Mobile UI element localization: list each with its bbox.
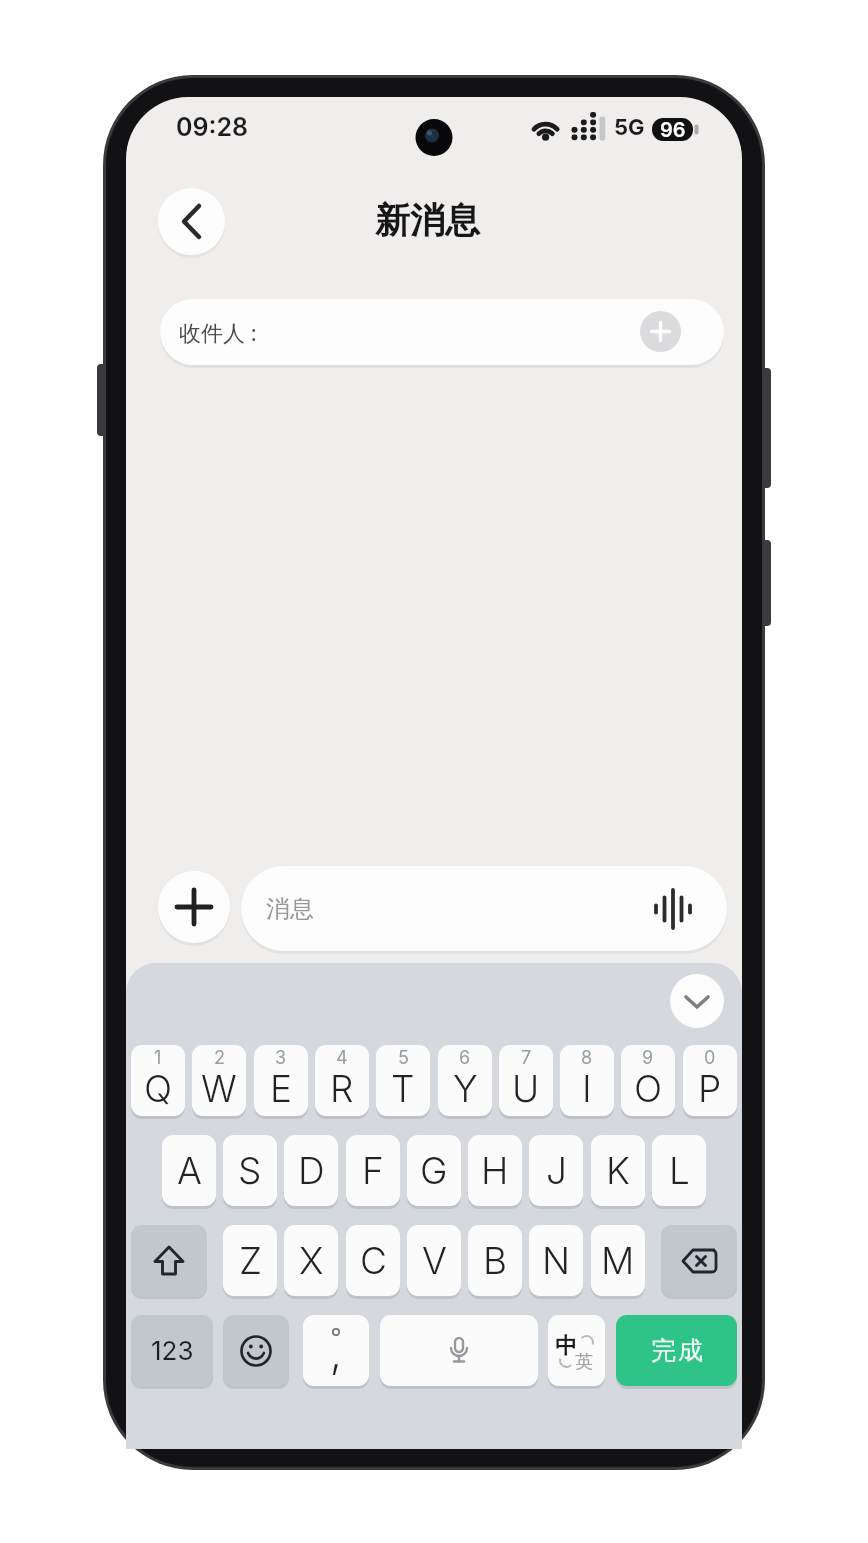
staticText: 4 (336, 1047, 348, 1069)
button[interactable] (640, 311, 681, 352)
staticText: L (669, 1148, 690, 1193)
staticText: 123 (151, 1335, 194, 1366)
button[interactable]: A (162, 1135, 216, 1206)
button[interactable]: M (591, 1225, 645, 1296)
button[interactable]: X (284, 1225, 338, 1296)
staticText: M (601, 1238, 635, 1283)
button[interactable]: H (468, 1135, 522, 1206)
button[interactable] (254, 1045, 308, 1116)
button[interactable]: 收件人 : (160, 299, 724, 365)
button[interactable]: L (652, 1135, 706, 1206)
button[interactable]: 完成 (616, 1315, 737, 1386)
staticText: T (391, 1066, 415, 1111)
staticText: U (512, 1066, 540, 1111)
button[interactable]: N (529, 1225, 583, 1296)
staticText: P (698, 1066, 722, 1111)
button[interactable] (499, 1045, 553, 1116)
staticText: J (546, 1148, 567, 1193)
button[interactable] (131, 1045, 185, 1116)
staticText: H (481, 1148, 509, 1193)
button[interactable]: Z (223, 1225, 277, 1296)
staticText: 8 (581, 1047, 593, 1069)
button[interactable]: S (223, 1135, 277, 1206)
staticText: 0 (704, 1047, 716, 1069)
button[interactable]: 123 (131, 1315, 213, 1386)
staticText: A (177, 1148, 202, 1193)
button[interactable] (223, 1315, 289, 1386)
button[interactable]: 消息 (241, 866, 727, 951)
button[interactable] (683, 1045, 737, 1116)
staticText: X (299, 1238, 324, 1283)
button[interactable]: G (407, 1135, 461, 1206)
button[interactable] (670, 974, 724, 1028)
button[interactable] (315, 1045, 369, 1116)
staticText: 完成 (650, 1335, 704, 1366)
staticText: K (606, 1148, 630, 1193)
staticText: 新消息 (375, 198, 480, 242)
staticText: V (422, 1238, 447, 1283)
button[interactable] (621, 1045, 675, 1116)
staticText: E (270, 1066, 293, 1111)
staticText: Y (453, 1066, 478, 1111)
button[interactable] (438, 1045, 492, 1116)
button[interactable] (192, 1045, 246, 1116)
staticText: 1 (154, 1047, 162, 1069)
button[interactable]: D (284, 1135, 338, 1206)
staticText: O (634, 1066, 663, 1111)
staticText: 5G (614, 114, 645, 141)
button[interactable] (158, 188, 225, 255)
button[interactable] (158, 871, 230, 943)
staticText: 2 (214, 1047, 225, 1069)
staticText: 7 (521, 1047, 532, 1069)
staticText: F (362, 1148, 384, 1193)
staticText: 中 (555, 1332, 577, 1360)
button[interactable]: J (529, 1135, 583, 1206)
staticText: 消息 (266, 894, 314, 924)
button[interactable]: K (591, 1135, 645, 1206)
button[interactable] (380, 1315, 538, 1386)
button[interactable] (560, 1045, 614, 1116)
staticText: 6 (459, 1047, 471, 1069)
staticText: I (582, 1066, 592, 1111)
staticText: 收件人 : (179, 317, 257, 347)
staticText: R (330, 1066, 354, 1111)
staticText: 9 (642, 1047, 654, 1069)
staticText: B (483, 1238, 508, 1283)
button[interactable]: , (303, 1315, 369, 1386)
button[interactable]: C (346, 1225, 400, 1296)
staticText: D (298, 1148, 325, 1193)
button[interactable]: B (468, 1225, 522, 1296)
button[interactable]: V (407, 1225, 461, 1296)
button[interactable]: F (346, 1135, 400, 1206)
staticText: , (330, 1327, 342, 1378)
button[interactable]: 中 (548, 1315, 605, 1386)
staticText: C (360, 1238, 387, 1283)
staticText: W (201, 1066, 237, 1111)
staticText: 96 (660, 118, 686, 141)
staticText: 09:28 (176, 112, 249, 142)
staticText: Z (239, 1238, 262, 1283)
button[interactable] (661, 1225, 737, 1296)
staticText: N (542, 1238, 571, 1283)
staticText: Q (144, 1066, 173, 1111)
staticText: S (238, 1148, 262, 1193)
button[interactable] (131, 1225, 207, 1296)
staticText: G (420, 1148, 448, 1193)
button[interactable] (376, 1045, 430, 1116)
staticText: 3 (275, 1047, 287, 1069)
staticText: 5 (398, 1047, 409, 1069)
staticText: 英 (575, 1351, 593, 1374)
